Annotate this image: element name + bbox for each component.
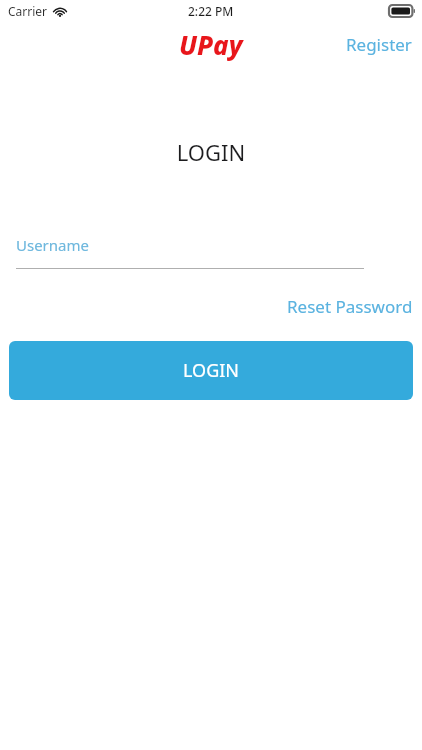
staticText: Carrier — [8, 3, 48, 19]
staticText: UPay — [179, 27, 243, 62]
staticText: LOGIN — [183, 358, 240, 383]
staticText: LOGIN — [0, 137, 422, 167]
button[interactable]: Register — [336, 27, 422, 62]
staticText: Register — [346, 33, 412, 56]
button[interactable]: Username — [0, 235, 422, 269]
button[interactable]: LOGIN — [9, 341, 413, 400]
staticText: Username — [16, 235, 89, 255]
button[interactable]: Reset Password — [278, 290, 422, 323]
staticText: 2:22 PM — [188, 3, 234, 19]
staticText: Reset Password — [287, 295, 413, 318]
